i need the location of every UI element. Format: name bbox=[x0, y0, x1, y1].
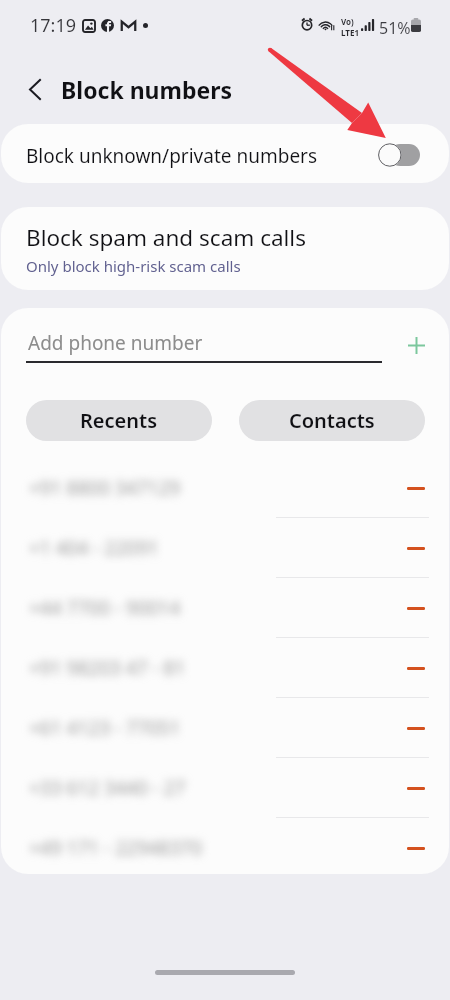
staticText: LTE1 bbox=[341, 27, 359, 38]
button[interactable]: Remove number bbox=[400, 832, 432, 864]
staticText: Block numbers bbox=[61, 74, 233, 105]
staticText: +61 4123 - 77051 bbox=[29, 715, 181, 741]
staticText: +1 404 - 22091 bbox=[29, 535, 159, 561]
staticText: 17:19 bbox=[30, 13, 77, 38]
staticText: Block spam and scam calls bbox=[26, 222, 306, 253]
button[interactable]: +33 612 3440 - 27 bbox=[1, 758, 449, 818]
staticText: +49 171 - 22948370 bbox=[29, 835, 203, 861]
staticText: Recents bbox=[80, 407, 158, 434]
staticText: Contacts bbox=[289, 407, 375, 434]
button[interactable]: Remove number bbox=[400, 712, 432, 744]
staticText: Only block high-risk scam calls bbox=[26, 256, 241, 276]
button[interactable]: Remove number bbox=[400, 652, 432, 684]
button[interactable]: Recents bbox=[26, 400, 212, 441]
button[interactable]: Back bbox=[15, 69, 55, 109]
staticText: Block unknown/private numbers bbox=[26, 143, 318, 169]
staticText: +33 612 3440 - 27 bbox=[29, 775, 186, 801]
button[interactable]: Remove number bbox=[400, 592, 432, 624]
button[interactable]: +49 171 - 22948370 bbox=[1, 818, 449, 874]
button[interactable]: Remove number bbox=[400, 772, 432, 804]
button[interactable]: +91 8800 347129 bbox=[1, 458, 449, 518]
button[interactable]: Block unknown/private numbers bbox=[1, 124, 449, 183]
staticText: 51% bbox=[379, 17, 411, 39]
button[interactable]: +44 7700 - 90014 bbox=[1, 578, 449, 638]
button[interactable]: +1 404 - 22091 bbox=[1, 518, 449, 578]
staticText: Vo) bbox=[341, 16, 354, 27]
staticText: +44 7700 - 90014 bbox=[29, 595, 181, 621]
button[interactable]: +91 98203 47 - 81 bbox=[1, 638, 449, 698]
button[interactable]: Contacts bbox=[239, 400, 425, 441]
button[interactable]: Remove number bbox=[400, 532, 432, 564]
staticText: +91 8800 347129 bbox=[29, 475, 181, 501]
button[interactable]: Block unknown numbers toggle bbox=[378, 143, 420, 167]
staticText: +91 98203 47 - 81 bbox=[29, 655, 186, 681]
button[interactable]: Add number bbox=[399, 328, 433, 362]
button[interactable]: Remove number bbox=[400, 472, 432, 504]
staticText: Add phone number bbox=[28, 330, 203, 356]
button[interactable]: +61 4123 - 77051 bbox=[1, 698, 449, 758]
button[interactable]: Block spam and scam calls bbox=[1, 207, 449, 290]
